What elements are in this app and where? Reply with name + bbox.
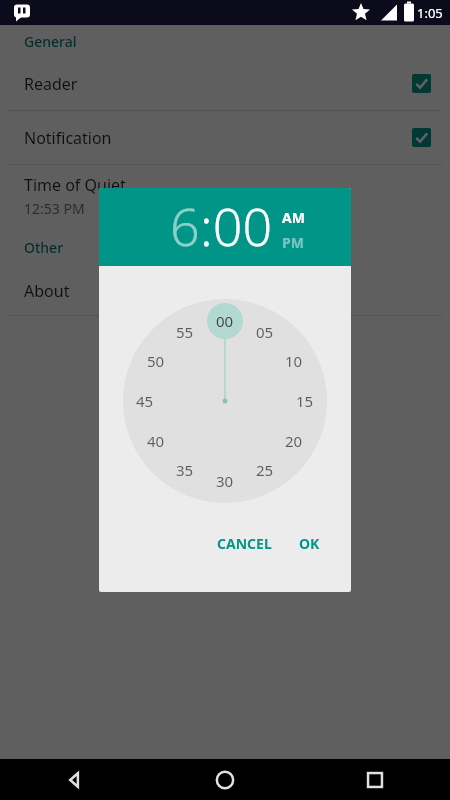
staticText: 1:05 (417, 4, 443, 22)
staticText: About (24, 280, 70, 302)
staticText: Notification (24, 127, 412, 149)
staticText: 25 (256, 460, 274, 480)
button[interactable]: Home (150, 759, 300, 800)
button[interactable]: Recents (300, 759, 450, 800)
button[interactable]: About (0, 267, 450, 315)
staticText: 40 (147, 431, 165, 451)
staticText: General (24, 32, 77, 51)
button[interactable]: CANCEL (208, 526, 281, 561)
staticText: 10 (285, 351, 303, 371)
staticText: 45 (136, 391, 154, 411)
button[interactable]: :00 (200, 190, 273, 261)
button[interactable]: AM (282, 208, 305, 227)
staticText: OK (299, 534, 320, 553)
button[interactable]: PM (282, 233, 304, 252)
staticText: 00 (216, 311, 234, 331)
staticText: 35 (176, 460, 194, 480)
staticText: Other (24, 238, 64, 257)
button[interactable]: Time of Quiet (0, 165, 450, 227)
staticText: 50 (147, 351, 165, 371)
button[interactable]: Notification (0, 111, 450, 164)
button[interactable]: 00 (123, 299, 327, 503)
staticText: 55 (176, 322, 194, 342)
staticText: 20 (285, 431, 303, 451)
staticText: 12:53 PM (24, 199, 85, 218)
staticText: CANCEL (217, 534, 272, 553)
button[interactable]: 6 (170, 190, 200, 261)
button[interactable]: Reader (0, 57, 450, 110)
button[interactable]: OK (290, 526, 329, 561)
staticText: Reader (24, 73, 412, 95)
staticText: 05 (256, 322, 274, 342)
staticText: Time of Quiet (24, 174, 126, 196)
staticText: 15 (296, 391, 314, 411)
staticText: 30 (216, 471, 234, 491)
button[interactable]: Back (0, 759, 150, 800)
